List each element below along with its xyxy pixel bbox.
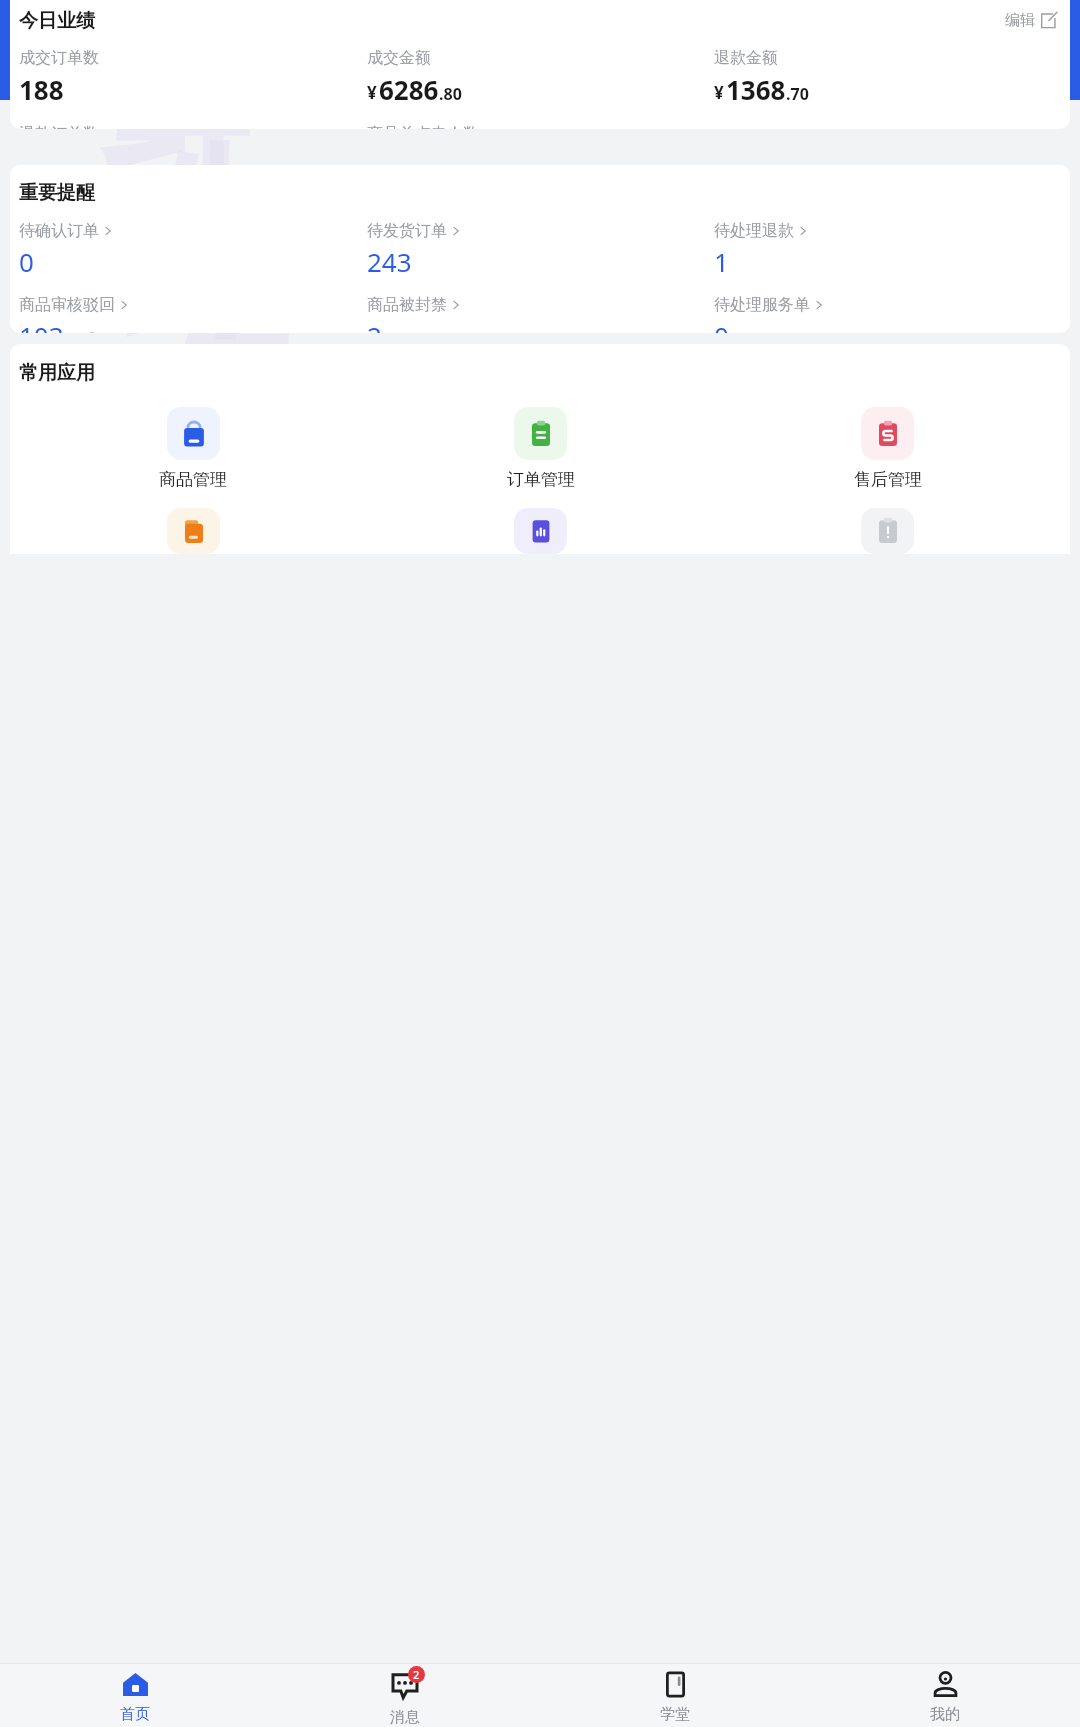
button[interactable]: 商品管理 (19, 407, 367, 490)
button[interactable]: 待发货订单 (367, 221, 714, 279)
button[interactable]: 待处理退款 (714, 221, 1061, 279)
staticText: 订单管理 (507, 469, 575, 490)
other: 消息 (388, 1668, 422, 1702)
button[interactable]: 我的 (810, 1664, 1080, 1727)
staticText: 商品审核驳回 (19, 295, 115, 315)
button[interactable]: 售后管理 (714, 407, 1061, 490)
button[interactable]: 资产管理 (19, 508, 367, 554)
button[interactable]: 抖店罗盘 (367, 508, 714, 554)
staticText: 消息 (390, 1708, 420, 1727)
staticText: .70 (786, 83, 809, 105)
staticText: 退款订单数 (19, 124, 99, 129)
button[interactable]: 待处理服务单 (714, 295, 1061, 333)
staticText: 鲜 (120, 185, 260, 361)
other: 编辑 (1040, 12, 1057, 29)
staticText: 今日业绩 (19, 9, 95, 33)
staticText: 商品被封禁 (367, 295, 447, 315)
button[interactable]: 服务单管理 (714, 508, 1061, 554)
button[interactable]: 待确认订单 (19, 221, 367, 279)
staticText: 售后管理 (854, 469, 922, 490)
staticText: 待处理服务单 (714, 295, 810, 315)
button[interactable]: 编辑 (1001, 7, 1061, 34)
button[interactable]: 成交订单数 (19, 48, 367, 107)
staticText: 待发货订单 (367, 221, 447, 241)
staticText: 商品总点击人数 (367, 124, 479, 129)
button[interactable]: 商品审核驳回 (19, 295, 367, 333)
button[interactable]: 退款订单数 (19, 124, 367, 129)
button[interactable]: 商品被封禁 (367, 295, 714, 333)
staticText: 188 (19, 72, 64, 107)
staticText: ¥ (714, 81, 724, 104)
staticText: 成交金额 (367, 48, 431, 68)
staticText: 鲜 (100, 10, 250, 199)
other: 学堂 (661, 1670, 690, 1699)
staticText: 243 (367, 244, 412, 279)
staticText: 生 (150, 130, 280, 294)
staticText: 我的 (930, 1705, 960, 1724)
button[interactable]: 商品总点击人数 (367, 124, 714, 129)
staticText: 0 (714, 318, 729, 333)
staticText: 0 (19, 244, 34, 279)
staticText: 退款金额 (714, 48, 778, 68)
staticText: 2 (413, 1667, 420, 1682)
button[interactable]: 订单管理 (367, 407, 714, 490)
staticText: 常用应用 (19, 361, 95, 385)
staticText: 6286 (379, 72, 439, 107)
button[interactable]: 首页 (0, 1664, 270, 1727)
staticText: 103 (19, 318, 64, 333)
staticText: 商品管理 (159, 469, 227, 490)
staticText: ¥ (367, 81, 377, 104)
staticText: 成交订单数 (19, 48, 99, 68)
staticText: 1 (714, 244, 729, 279)
staticText: 1368 (726, 72, 786, 107)
other: 首页 (121, 1670, 150, 1699)
staticText: 重要提醒 (19, 181, 95, 205)
button[interactable]: 成交金额 (367, 48, 714, 107)
other: 我的 (931, 1670, 960, 1699)
staticText: 生 (165, 290, 295, 454)
staticText: 待处理退款 (714, 221, 794, 241)
staticText: 学堂 (660, 1705, 690, 1724)
staticText: 待确认订单 (19, 221, 99, 241)
button[interactable]: 退款金额 (714, 48, 1061, 107)
staticText: 首页 (120, 1705, 150, 1724)
button[interactable]: 消息 (270, 1664, 540, 1727)
button[interactable]: 学堂 (540, 1664, 810, 1727)
staticText: 编辑 (1005, 11, 1035, 30)
staticText: .80 (439, 83, 462, 105)
staticText: 2 (367, 318, 382, 333)
